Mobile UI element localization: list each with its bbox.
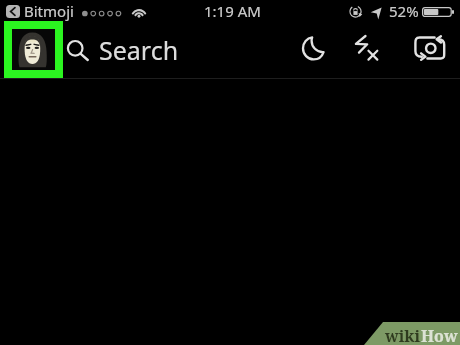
button[interactable]: Flash off <box>353 35 383 67</box>
button[interactable]: Profile <box>4 21 63 78</box>
staticText: Bitmoji <box>24 1 74 21</box>
staticText: 1:19 AM <box>204 1 261 21</box>
staticText: wiki <box>385 325 421 345</box>
button[interactable]: Search <box>66 23 184 78</box>
button[interactable]: Flip camera <box>413 35 449 62</box>
button[interactable]: Back <box>6 5 20 18</box>
button[interactable]: Night mode <box>298 32 328 64</box>
staticText: How <box>421 325 458 345</box>
staticText: 52% <box>389 1 419 21</box>
staticText: Search <box>99 33 179 67</box>
